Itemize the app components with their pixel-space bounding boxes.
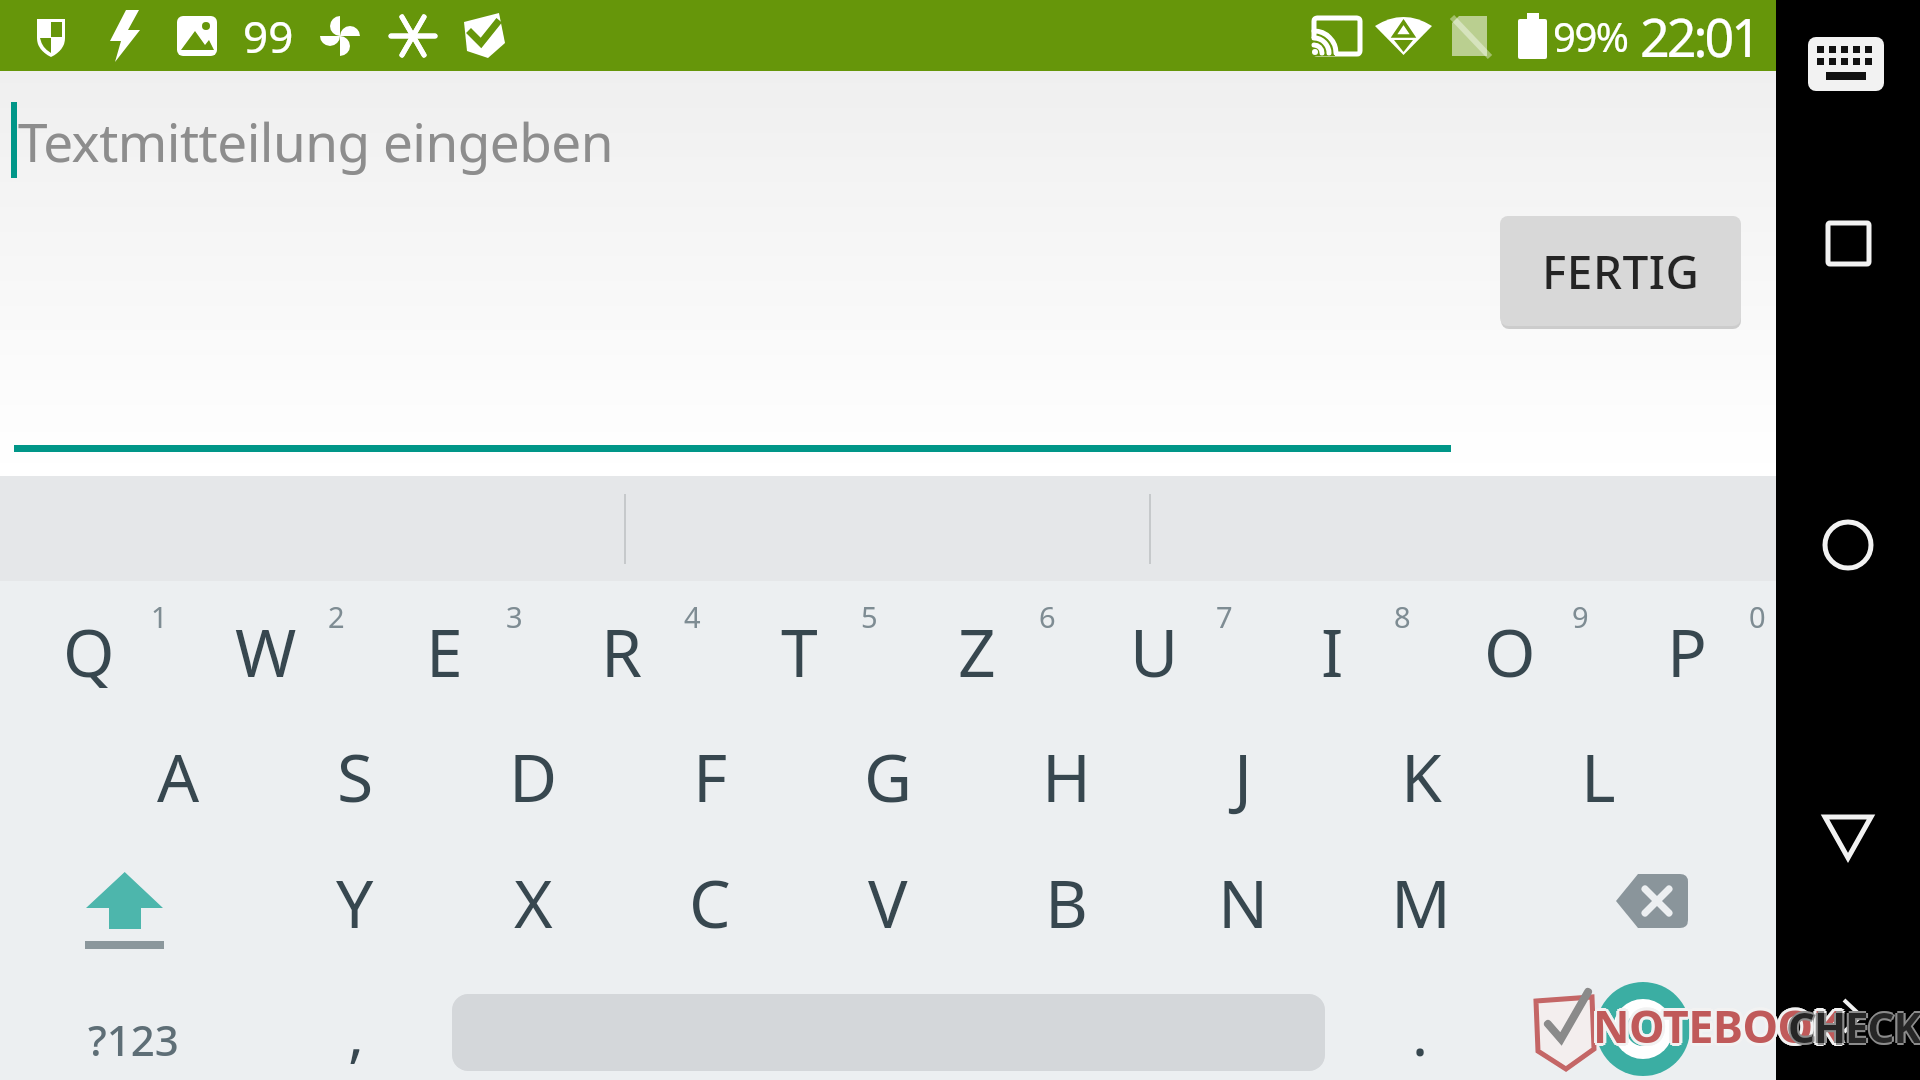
staticText: 7 xyxy=(1216,597,1233,636)
staticText: 8 xyxy=(1394,597,1411,636)
button[interactable] xyxy=(1510,840,1776,964)
staticText: CHECK xyxy=(1786,998,1919,1055)
staticText: NOTEBOOK xyxy=(1591,997,1840,1058)
staticText: I xyxy=(1321,606,1344,696)
staticText: U xyxy=(1130,606,1179,696)
staticText: NOTEBOOK xyxy=(1593,998,1842,1059)
staticText: CHECK xyxy=(1790,998,1920,1055)
staticText: 99% xyxy=(1553,9,1628,63)
staticText: , xyxy=(348,992,365,1074)
button[interactable]: M xyxy=(1333,840,1509,964)
staticText: 3 xyxy=(506,597,523,636)
button[interactable]: J xyxy=(1155,714,1331,838)
staticText: O xyxy=(1484,606,1536,696)
staticText: NOTEBOOK xyxy=(1591,993,1840,1054)
button[interactable]: L xyxy=(1510,714,1686,838)
staticText: 6 xyxy=(1039,597,1056,636)
staticText: T xyxy=(781,606,818,696)
button[interactable]: , xyxy=(296,978,416,1080)
staticText: NOTEBOOK xyxy=(1593,992,1842,1053)
staticText: Textmitteilung eingeben xyxy=(18,105,613,177)
staticText: CHECK xyxy=(1788,1000,1920,1057)
staticText: B xyxy=(1045,857,1088,947)
button[interactable] xyxy=(0,840,266,964)
button[interactable]: Z xyxy=(889,589,1065,713)
staticText: S xyxy=(337,731,374,821)
button[interactable]: A xyxy=(90,714,266,838)
button[interactable]: E xyxy=(356,589,532,713)
staticText: V xyxy=(868,857,908,947)
button[interactable]: U xyxy=(1066,589,1242,713)
staticText: NOTEBOOK xyxy=(1590,995,1839,1056)
button[interactable]: P xyxy=(1599,589,1775,713)
button[interactable] xyxy=(1800,196,1896,292)
button[interactable] xyxy=(1800,20,1896,110)
staticText: D xyxy=(509,731,558,821)
button[interactable]: C xyxy=(622,840,798,964)
staticText: NOTEBOOK xyxy=(1593,995,1842,1056)
button[interactable]: G xyxy=(800,714,976,838)
staticText: NOTEBOOK xyxy=(1595,993,1844,1054)
button[interactable]: W xyxy=(178,589,354,713)
button[interactable]: S xyxy=(267,714,443,838)
button[interactable]: . xyxy=(1360,978,1480,1080)
button[interactable]: D xyxy=(445,714,621,838)
button[interactable]: B xyxy=(978,840,1154,964)
staticText: 1 xyxy=(151,597,168,636)
staticText: ?123 xyxy=(88,1011,179,1068)
staticText: J xyxy=(1234,731,1253,821)
staticText: 2 xyxy=(328,597,345,636)
staticText: Z xyxy=(958,606,996,696)
staticText: F xyxy=(693,731,728,821)
staticText: M xyxy=(1391,857,1451,947)
staticText: P xyxy=(1667,606,1707,696)
button[interactable]: V xyxy=(800,840,976,964)
button[interactable]: N xyxy=(1155,840,1331,964)
staticText: NOTEBOOK xyxy=(1595,997,1844,1058)
button[interactable]: R xyxy=(534,589,710,713)
staticText: NOTEBOOK xyxy=(1596,995,1845,1056)
staticText: Y xyxy=(336,857,374,947)
staticText: FERTIG xyxy=(1542,240,1700,303)
button[interactable]: H xyxy=(978,714,1154,838)
staticText: E xyxy=(426,606,463,696)
button[interactable]: Q xyxy=(1,589,177,713)
staticText: 99 xyxy=(243,6,294,66)
staticText: G xyxy=(864,731,913,821)
staticText: 9 xyxy=(1572,597,1589,636)
button[interactable]: F xyxy=(622,714,798,838)
staticText: 0 xyxy=(1749,597,1766,636)
button[interactable]: FERTIG xyxy=(1500,216,1741,326)
staticText: 4 xyxy=(684,597,701,636)
staticText: Q xyxy=(63,606,115,696)
button[interactable] xyxy=(1800,789,1896,885)
button[interactable]: K xyxy=(1333,714,1509,838)
button[interactable]: ?123 xyxy=(33,984,233,1080)
staticText: W xyxy=(235,606,297,696)
staticText: X xyxy=(514,857,553,947)
staticText: C xyxy=(689,857,731,947)
button[interactable]: I xyxy=(1244,589,1420,713)
staticText: 5 xyxy=(861,597,878,636)
button[interactable]: X xyxy=(445,840,621,964)
staticText: L xyxy=(1581,731,1616,821)
staticText: CHECK xyxy=(1788,998,1920,1055)
button[interactable]: Y xyxy=(267,840,443,964)
staticText: K xyxy=(1401,731,1442,821)
button[interactable] xyxy=(0,71,1776,478)
staticText: R xyxy=(601,606,643,696)
button[interactable]: O xyxy=(1422,589,1598,713)
staticText: CHECK xyxy=(1788,996,1920,1053)
staticText: . xyxy=(1412,992,1429,1074)
staticText: 22:01 xyxy=(1640,1,1758,72)
staticText: H xyxy=(1042,731,1091,821)
button[interactable] xyxy=(1800,497,1896,593)
staticText: A xyxy=(157,731,200,821)
staticText: N xyxy=(1218,857,1269,947)
button[interactable]: T xyxy=(711,589,887,713)
